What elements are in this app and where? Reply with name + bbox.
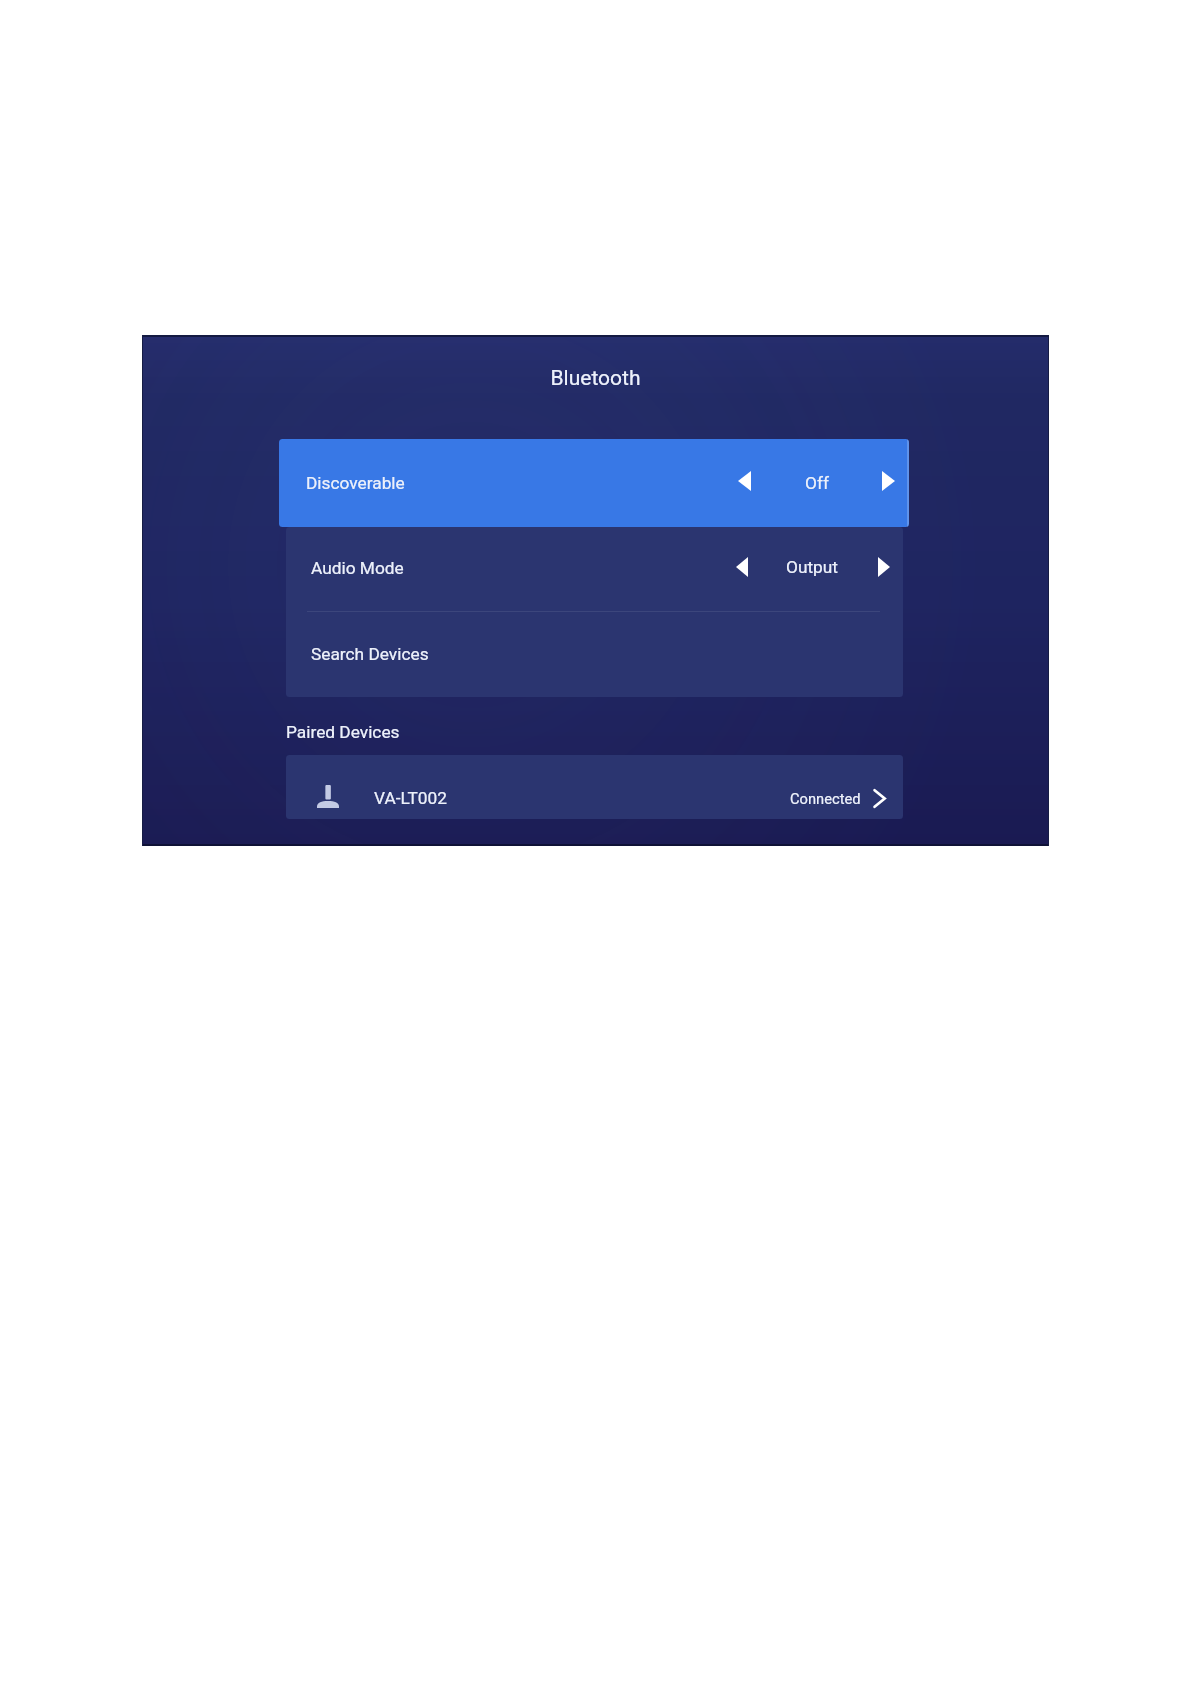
button[interactable]: Previous value <box>738 471 751 491</box>
button[interactable]: Discoverable <box>279 439 909 527</box>
staticText: VA-LT002 <box>374 788 447 808</box>
button[interactable]: Next value <box>882 471 895 491</box>
staticText: Paired Devices <box>286 722 400 742</box>
staticText: Bluetooth <box>142 366 1049 391</box>
button[interactable]: Previous value <box>736 557 748 577</box>
button[interactable]: Next value <box>878 557 890 577</box>
staticText: Search Devices <box>311 644 429 664</box>
button[interactable]: Audio Mode <box>286 527 903 611</box>
other: Device details <box>873 789 886 808</box>
staticText: Discoverable <box>306 473 405 493</box>
staticText: Output <box>778 557 846 577</box>
button[interactable]: VA-LT002 <box>286 755 903 819</box>
staticText: Off <box>783 473 851 493</box>
button[interactable]: Search Devices <box>286 612 903 697</box>
staticText: Audio Mode <box>311 558 404 578</box>
staticText: Connected <box>790 790 861 807</box>
